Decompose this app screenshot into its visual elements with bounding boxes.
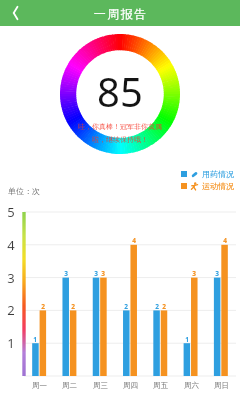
staticText: 啦，继续保持哦！ — [92, 135, 148, 144]
staticText: 2 — [41, 302, 45, 311]
button[interactable]: 运动情况 — [181, 181, 234, 191]
staticText: 1 — [33, 335, 37, 344]
staticText: 4 — [7, 236, 15, 254]
staticText: 3 — [94, 269, 98, 278]
staticText: 用药情况 — [202, 169, 234, 179]
staticText: 4 — [132, 236, 136, 245]
staticText: 3 — [64, 269, 68, 278]
staticText: 1 — [185, 335, 189, 344]
staticText: 85 — [97, 64, 143, 118]
staticText: 3 — [215, 269, 219, 278]
button[interactable]: Back — [0, 0, 26, 26]
staticText: 一周报告 — [93, 6, 147, 21]
staticText: 运动情况 — [202, 181, 234, 191]
staticText: 2 — [7, 301, 15, 319]
staticText: 2 — [71, 302, 75, 311]
staticText: 3 — [7, 269, 15, 287]
staticText: 周六 — [184, 381, 199, 390]
staticText: 周日 — [214, 381, 229, 390]
staticText: 周三 — [93, 381, 108, 390]
staticText: 2 — [155, 302, 159, 311]
staticText: 周四 — [123, 381, 138, 390]
staticText: 周五 — [153, 381, 168, 390]
staticText: 3 — [101, 269, 105, 278]
staticText: 周二 — [62, 381, 77, 390]
staticText: 1 — [7, 334, 15, 352]
staticText: 5 — [7, 203, 15, 221]
staticText: 单位：次 — [8, 186, 40, 196]
button[interactable]: 用药情况 — [181, 169, 234, 179]
staticText: 2 — [162, 302, 166, 311]
staticText: 2 — [124, 302, 128, 311]
staticText: 4 — [223, 236, 227, 245]
staticText: 周一 — [32, 381, 47, 390]
staticText: 3 — [192, 269, 196, 278]
staticText: 哇，你真棒！冠军非你莫属 — [78, 122, 162, 131]
